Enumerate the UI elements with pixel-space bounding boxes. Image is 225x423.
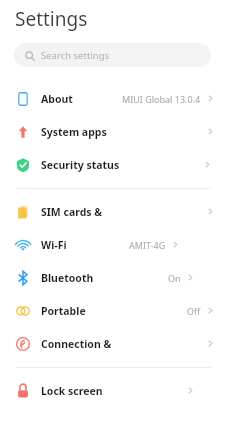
staticText: On <box>168 272 181 284</box>
staticText: Off <box>187 305 201 317</box>
button[interactable]: SIM cards & mobile networks <box>0 195 225 228</box>
staticText: Lock screen <box>41 384 103 398</box>
staticText: About phone <box>41 92 81 106</box>
button[interactable]: Portable hotspot <box>0 294 225 327</box>
button[interactable]: Wi-Fi <box>0 228 225 261</box>
button[interactable]: Search settings <box>14 43 211 67</box>
staticText: Security status <box>41 158 120 172</box>
button[interactable]: Bluetooth <box>0 261 225 294</box>
button[interactable]: Connection & sharing <box>0 327 225 360</box>
button[interactable]: System apps updater <box>0 115 225 148</box>
staticText: MIUI Global 13.0.4 <box>122 93 201 105</box>
button[interactable]: Lock screen <box>0 374 225 407</box>
staticText: Connection & sharing <box>41 337 123 351</box>
staticText: Search settings <box>41 49 110 62</box>
staticText: System apps updater <box>41 125 123 139</box>
button[interactable]: About phone <box>0 82 225 115</box>
button[interactable]: Security status <box>0 148 225 181</box>
staticText: Bluetooth <box>41 271 94 285</box>
staticText: SIM cards & mobile networks <box>41 205 123 219</box>
staticText: Settings <box>15 6 88 32</box>
staticText: Portable hotspot <box>41 304 114 318</box>
staticText: Wi-Fi <box>41 238 67 252</box>
staticText: AMIT-4G <box>129 239 166 251</box>
